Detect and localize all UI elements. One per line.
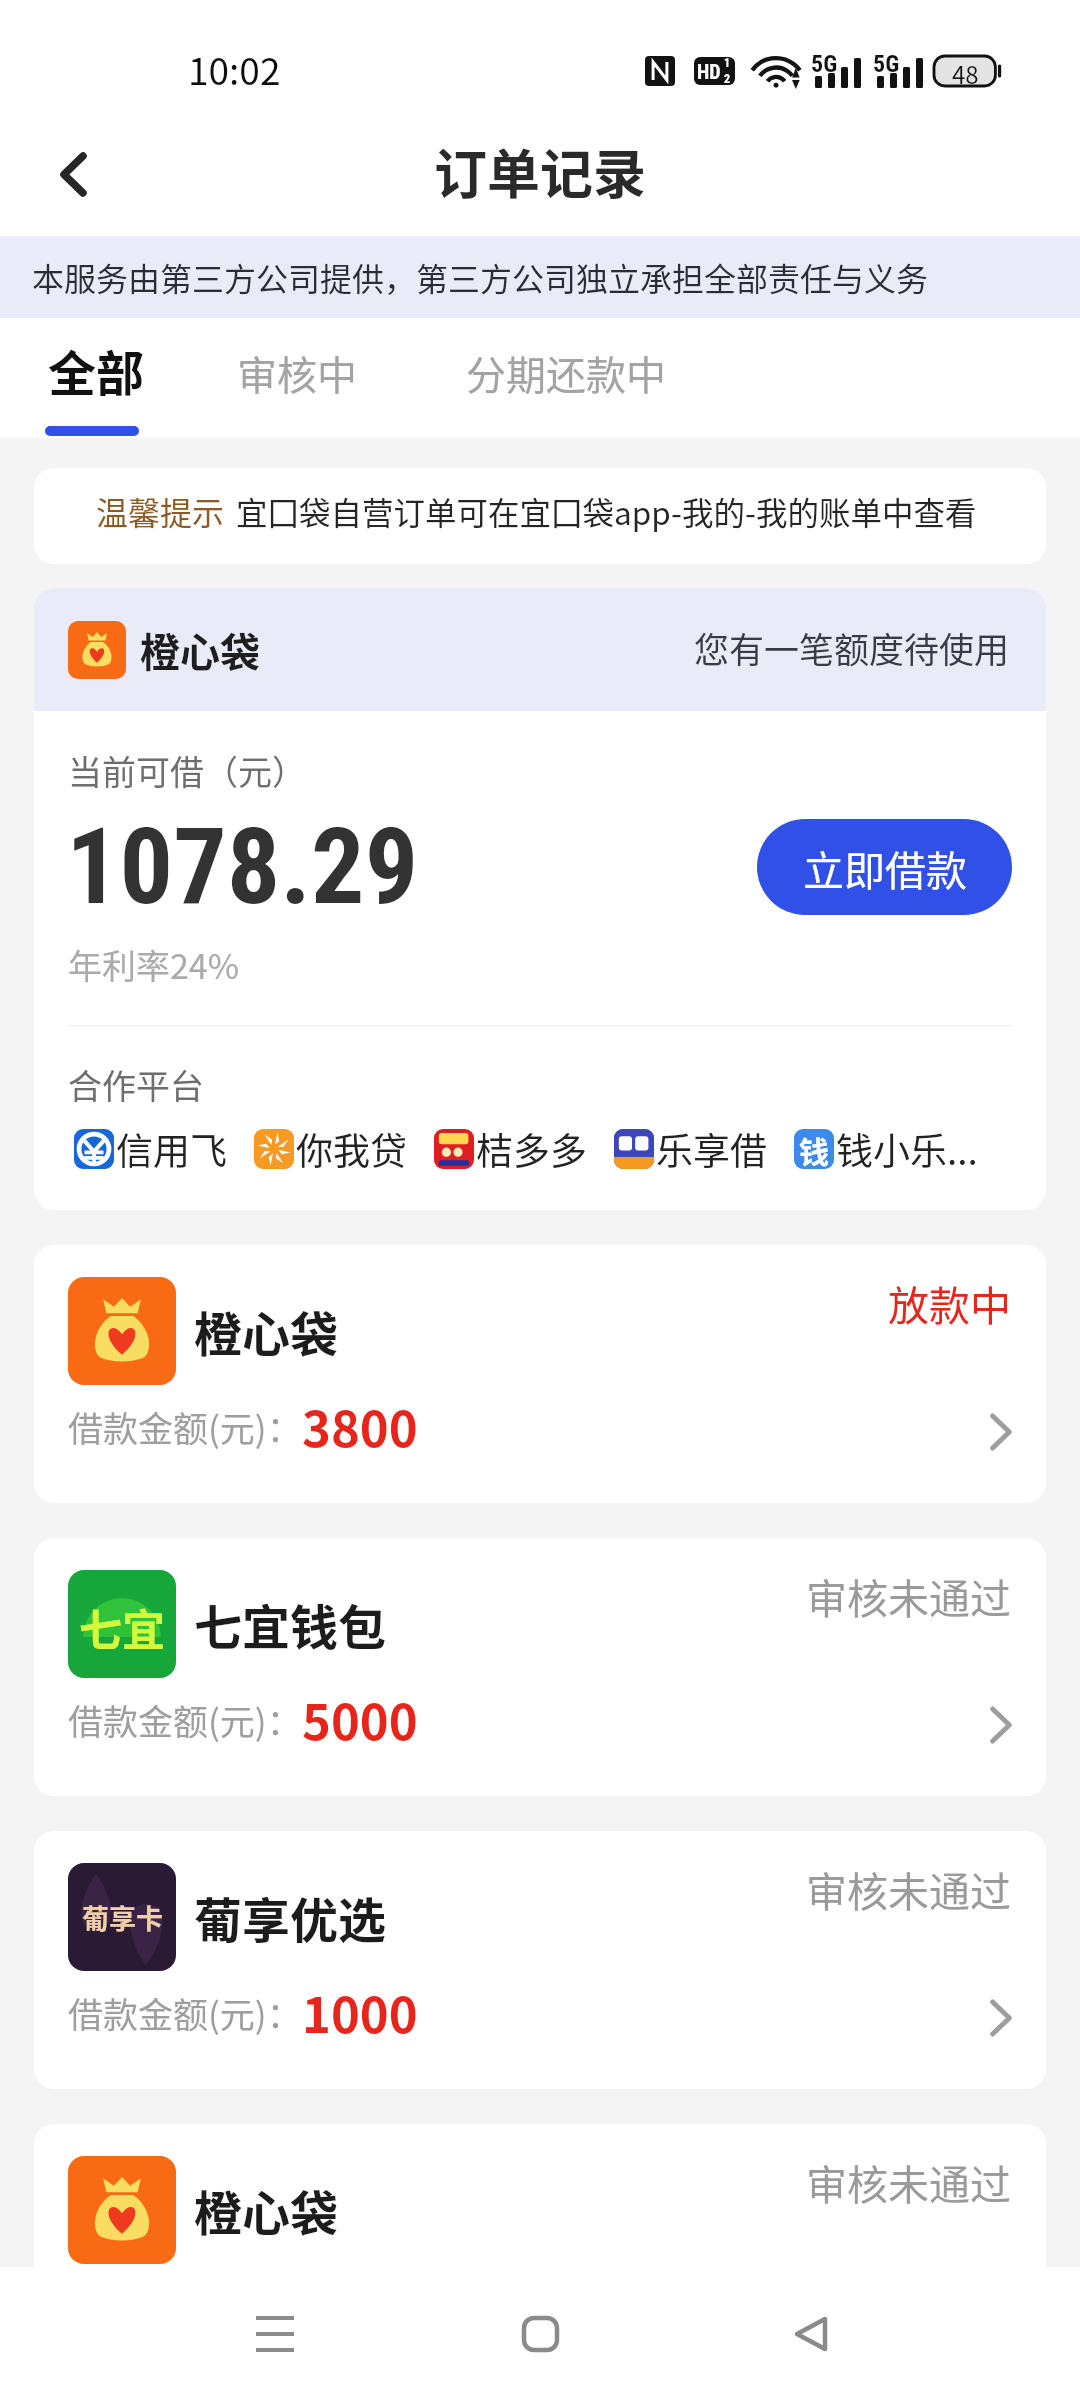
button[interactable]: Back: [36, 137, 110, 211]
button[interactable]: 审核中: [215, 318, 379, 438]
staticText: 七宜: [79, 1596, 165, 1658]
staticText: 本服务由第三方公司提供，第三方公司独立承担全部责任与义务: [32, 254, 929, 300]
staticText: 10:02: [188, 42, 281, 96]
button[interactable]: 全部: [28, 318, 165, 438]
staticText: 1078.29: [66, 805, 419, 915]
staticText: 审核未通过: [806, 1859, 1011, 1918]
staticText: 全部: [48, 335, 145, 405]
staticText: 48: [952, 56, 979, 86]
staticText: 借款金额(元)：: [68, 1987, 302, 2038]
staticText: 审核中: [237, 344, 357, 402]
staticText: 年利率24%: [68, 940, 240, 989]
staticText: 七宜钱包: [194, 1589, 387, 1659]
staticText: HD: [697, 60, 721, 83]
button[interactable]: 分期还款中: [444, 318, 688, 438]
staticText: 3800: [302, 1390, 418, 1461]
button[interactable]: 乐享借: [614, 1122, 767, 1176]
button[interactable]: 信用飞: [74, 1122, 227, 1176]
button[interactable]: Back: [691, 2267, 931, 2400]
staticText: 借款金额(元)：: [68, 1401, 302, 1452]
staticText: 您有一笔额度待使用: [694, 622, 1010, 673]
staticText: 合作平台: [68, 1060, 204, 1109]
staticText: 审核未通过: [806, 2152, 1011, 2211]
staticText: 钱: [799, 1129, 829, 1168]
button[interactable]: 葡享卡: [34, 1831, 1046, 2089]
staticText: 1: [724, 56, 731, 70]
staticText: 乐享借: [656, 1122, 767, 1176]
button[interactable]: 钱: [794, 1122, 978, 1176]
staticText: 5G: [873, 50, 900, 78]
staticText: 借款金额(元)：: [68, 1694, 302, 1745]
staticText: 1000: [302, 1976, 418, 2047]
button[interactable]: Recent apps: [155, 2267, 395, 2400]
staticText: 当前可借（元）: [68, 746, 306, 795]
staticText: 订单记录: [434, 133, 646, 210]
staticText: 葡享卡: [82, 1898, 163, 1937]
staticText: 2: [724, 72, 731, 86]
staticText: 分期还款中: [466, 344, 666, 402]
staticText: 温馨提示: [96, 488, 225, 534]
button[interactable]: Home: [420, 2267, 660, 2400]
button[interactable]: 橙心袋: [34, 1245, 1046, 1503]
button[interactable]: 立即借款: [757, 819, 1012, 915]
staticText: 橙心袋: [194, 1296, 339, 1366]
button[interactable]: 橙心袋: [34, 2124, 1046, 2382]
staticText: 放款中: [888, 1273, 1011, 1332]
staticText: 5G: [811, 50, 838, 78]
staticText: 立即借款: [803, 838, 967, 897]
staticText: 审核未通过: [806, 1566, 1011, 1625]
staticText: 信用飞: [116, 1122, 227, 1176]
staticText: 橙心袋: [140, 621, 260, 679]
staticText: 5000: [302, 1683, 418, 1754]
button[interactable]: 你我贷: [254, 1122, 407, 1176]
staticText: 橙心袋: [194, 2175, 339, 2245]
button[interactable]: 桔多多: [434, 1122, 587, 1176]
staticText: 宜囗袋自营订单可在宜囗袋app-我的-我的账单中查看: [236, 488, 977, 534]
staticText: 钱小乐...: [836, 1122, 978, 1176]
button[interactable]: 七宜: [34, 1538, 1046, 1796]
staticText: 桔多多: [476, 1122, 587, 1176]
button[interactable]: 温馨提示: [34, 468, 1046, 564]
staticText: 借款金额(元)：: [68, 2280, 302, 2331]
staticText: 葡享优选: [194, 1882, 387, 1952]
staticText: 你我贷: [296, 1122, 407, 1176]
